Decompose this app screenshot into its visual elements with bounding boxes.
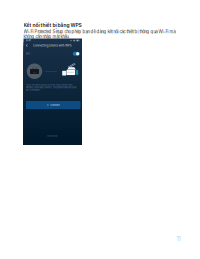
staticText: 9:41 <box>33 41 52 52</box>
button[interactable]: Back <box>27 53 45 79</box>
staticText: Kết nối thiết bị bằng WPS <box>23 22 81 28</box>
staticText: WPS <box>31 95 49 104</box>
staticText: Connecting Device with WPS <box>61 60 200 73</box>
staticText: 11 <box>176 235 180 242</box>
staticText: Wi-Fi Protected Setup cho phép bạn dễ dà… <box>23 29 175 39</box>
